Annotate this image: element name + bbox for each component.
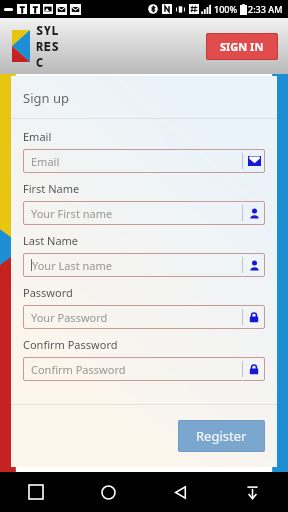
button[interactable]: Recent apps: [0, 472, 72, 512]
staticText: Confirm Password: [31, 362, 126, 377]
staticText: Email: [23, 129, 52, 144]
staticText: SYL: [36, 22, 60, 38]
staticText: Your Last name: [32, 258, 113, 273]
button[interactable]: SIGN IN: [206, 33, 278, 60]
staticText: 2:33 AM: [248, 3, 283, 15]
button[interactable]: Your Last name: [23, 253, 265, 277]
button[interactable]: Your Password: [23, 305, 265, 329]
button[interactable]: Home: [72, 472, 144, 512]
staticText: C: [36, 54, 44, 70]
button[interactable]: Hide keyboard: [216, 472, 288, 512]
staticText: First Name: [23, 181, 80, 196]
staticText: Confirm Password: [23, 337, 118, 352]
button[interactable]: Email: [23, 149, 265, 173]
staticText: Email: [31, 154, 60, 169]
staticText: Last Name: [23, 233, 79, 248]
button[interactable]: Your First name: [23, 201, 265, 225]
staticText: Your Password: [31, 310, 108, 325]
staticText: Your First name: [31, 206, 113, 221]
button[interactable]: Confirm Password: [23, 357, 265, 381]
staticText: Register: [196, 427, 247, 445]
staticText: RES: [36, 38, 60, 54]
staticText: SIGN IN: [220, 39, 264, 54]
staticText: 100%: [214, 3, 238, 15]
button[interactable]: Register: [178, 420, 265, 452]
staticText: Password: [23, 285, 73, 300]
staticText: Sign up: [23, 89, 69, 107]
button[interactable]: Back: [144, 472, 216, 512]
